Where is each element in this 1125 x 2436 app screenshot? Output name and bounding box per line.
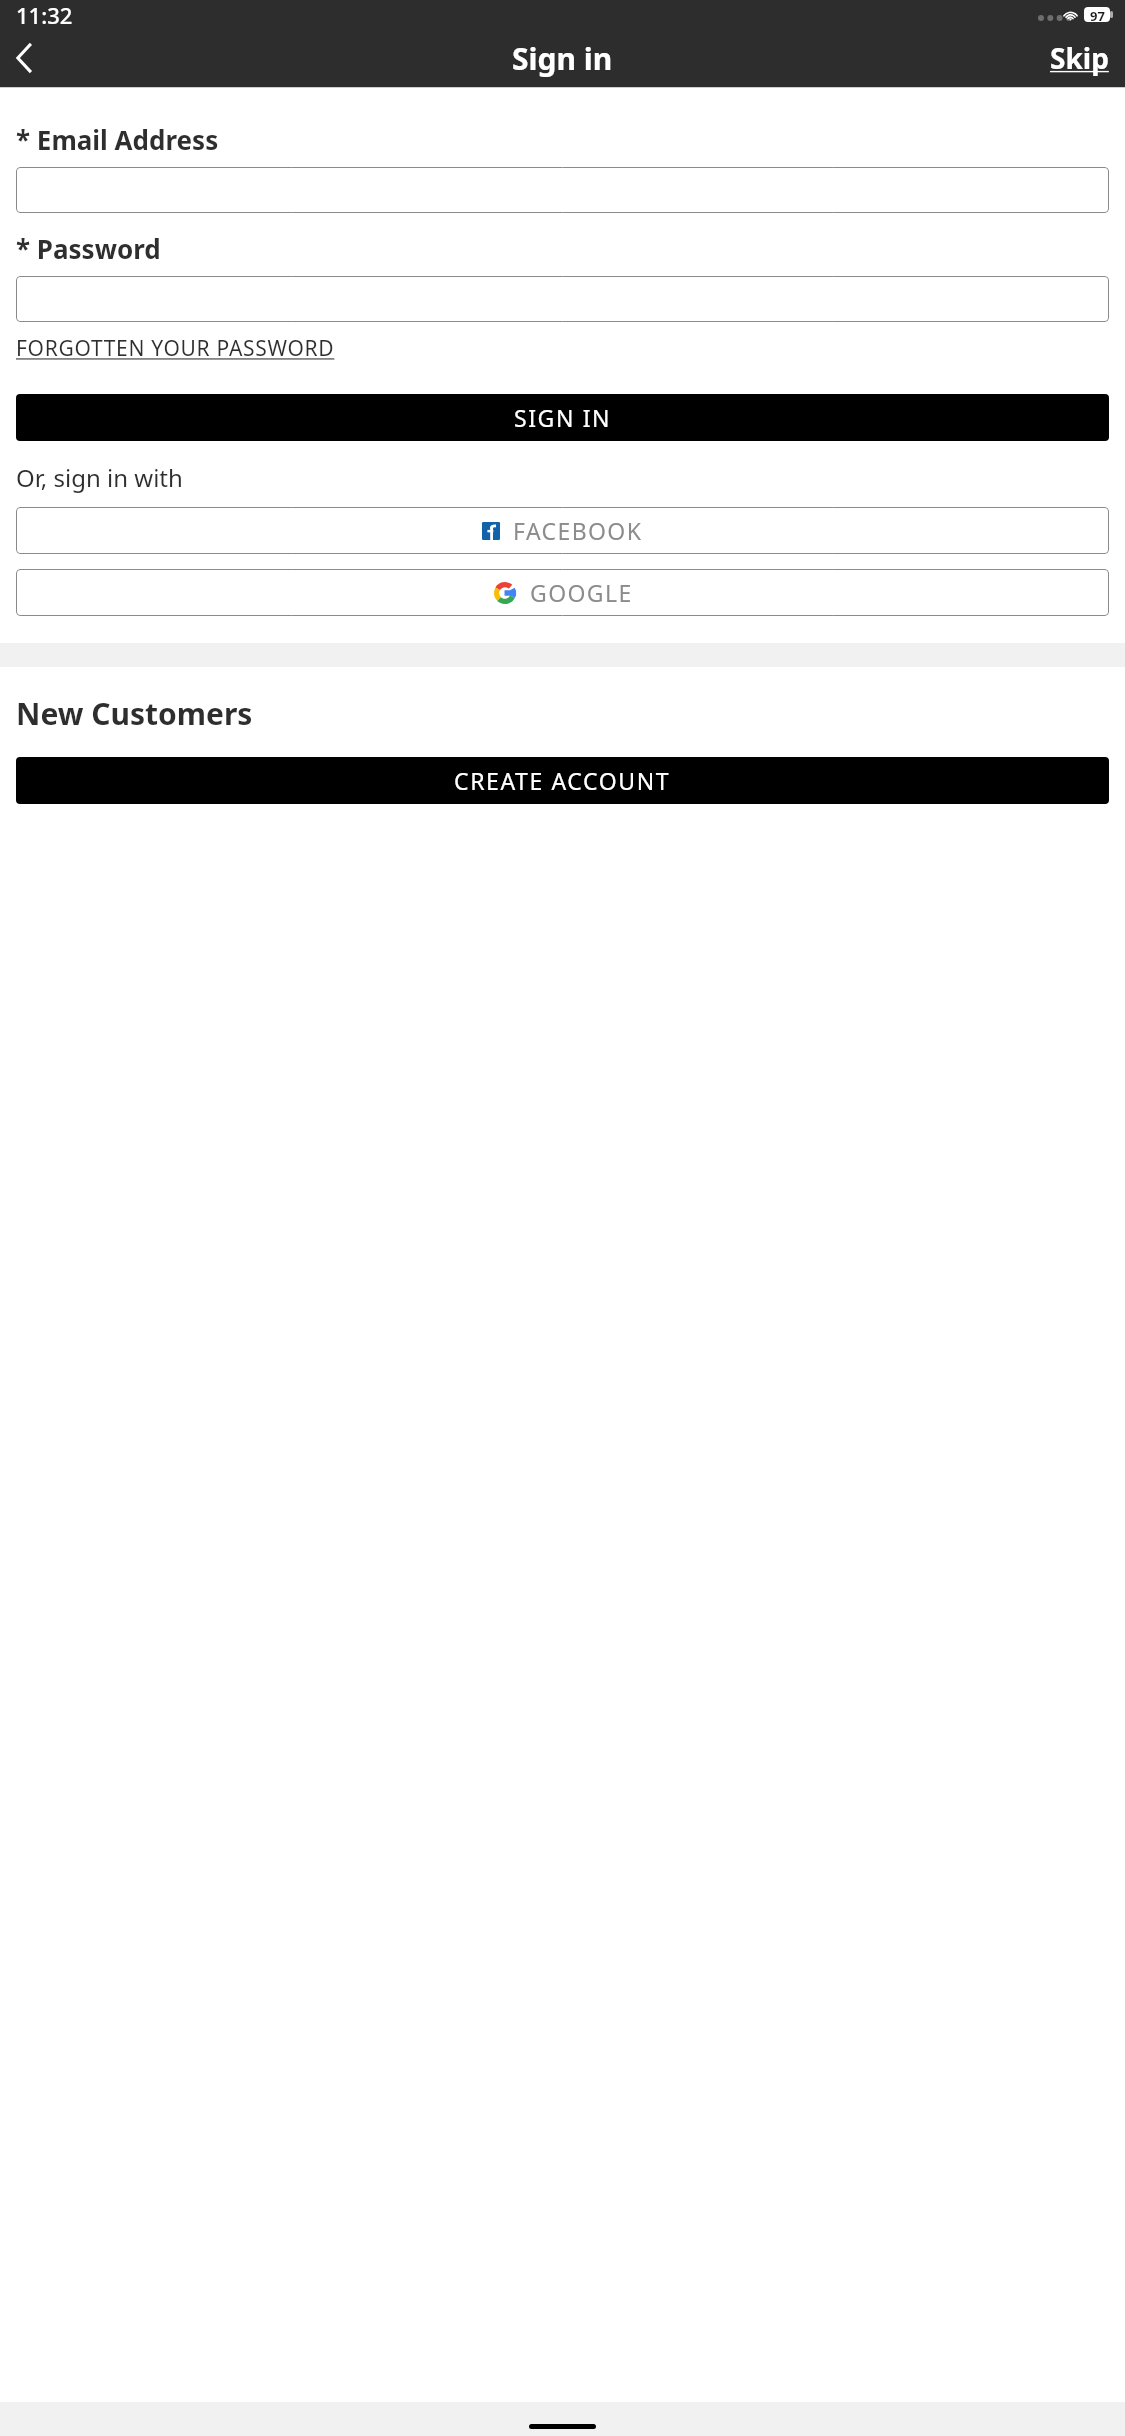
staticText: FACEBOOK xyxy=(513,515,643,546)
staticText: Skip xyxy=(1050,39,1109,77)
staticText: Sign in xyxy=(512,38,613,79)
staticText: Or, sign in with xyxy=(16,461,183,494)
staticText: * Password xyxy=(16,231,161,266)
button[interactable]: CREATE ACCOUNT xyxy=(16,757,1109,804)
staticText: 11:32 xyxy=(16,0,73,29)
staticText: 97 xyxy=(1090,7,1105,22)
button[interactable]: Skip xyxy=(1034,29,1125,87)
button[interactable]: GOOGLE xyxy=(16,569,1109,616)
staticText: GOOGLE xyxy=(530,577,633,608)
button[interactable]: FORGOTTEN YOUR PASSWORD xyxy=(16,334,335,363)
staticText: SIGN IN xyxy=(514,402,612,433)
staticText: * Email Address xyxy=(16,122,219,157)
staticText: CREATE ACCOUNT xyxy=(454,765,671,796)
staticText: New Customers xyxy=(16,693,253,734)
button[interactable] xyxy=(16,167,1109,213)
button[interactable] xyxy=(16,276,1109,322)
staticText: FORGOTTEN YOUR PASSWORD xyxy=(16,334,335,363)
button[interactable]: Back xyxy=(0,34,48,82)
button[interactable]: SIGN IN xyxy=(16,394,1109,441)
button[interactable]: FACEBOOK xyxy=(16,507,1109,554)
